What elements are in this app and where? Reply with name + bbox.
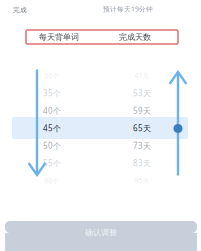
staticText: 59天 [133, 105, 151, 116]
button[interactable]: 确认调整 [5, 221, 197, 251]
staticText: 83天 [133, 158, 151, 168]
staticText: 30个 [44, 71, 59, 80]
staticText: 73天 [133, 140, 151, 151]
staticText: 65天 [133, 123, 151, 133]
button[interactable]: 完成 [5, 1, 35, 19]
staticText: 60个 [44, 176, 59, 185]
staticText: 确认调整 [85, 228, 117, 237]
staticText: 35个 [43, 88, 61, 98]
staticText: 40个 [43, 105, 61, 116]
staticText: 95天 [134, 176, 149, 185]
staticText: 预计每天19分钟 [103, 5, 153, 13]
staticText: 完成 [13, 6, 27, 14]
staticText: 完成天数 [119, 32, 151, 42]
staticText: 55个 [43, 158, 61, 168]
staticText: 45个 [43, 123, 61, 133]
staticText: 50个 [43, 140, 61, 151]
staticText: 47天 [134, 71, 149, 80]
staticText: 53天 [133, 88, 151, 98]
staticText: 每天背单词 [39, 32, 79, 42]
